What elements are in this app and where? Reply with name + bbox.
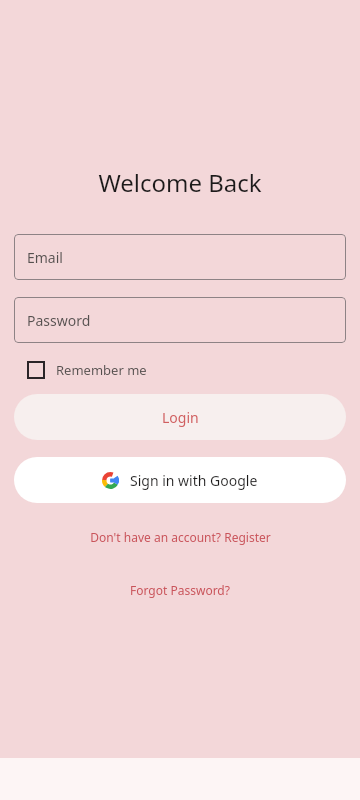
staticText: Email — [27, 248, 63, 267]
button[interactable]: Don't have an account? Register — [82, 525, 279, 549]
button[interactable]: Forgot Password? — [122, 578, 238, 602]
staticText: Welcome Back — [98, 166, 262, 199]
staticText: Password — [27, 311, 91, 330]
button[interactable]: Remember me — [14, 361, 346, 379]
staticText: Remember me — [56, 361, 147, 379]
button[interactable]: Google — [14, 457, 346, 503]
button[interactable]: Password — [14, 297, 346, 343]
staticText: Don't have an account? Register — [90, 529, 271, 545]
staticText: Login — [162, 408, 199, 427]
other: Google — [102, 472, 119, 489]
staticText: Sign in with Google — [130, 471, 258, 490]
button[interactable]: Email — [14, 234, 346, 280]
staticText: Forgot Password? — [130, 582, 230, 598]
button[interactable]: Login — [14, 394, 346, 440]
